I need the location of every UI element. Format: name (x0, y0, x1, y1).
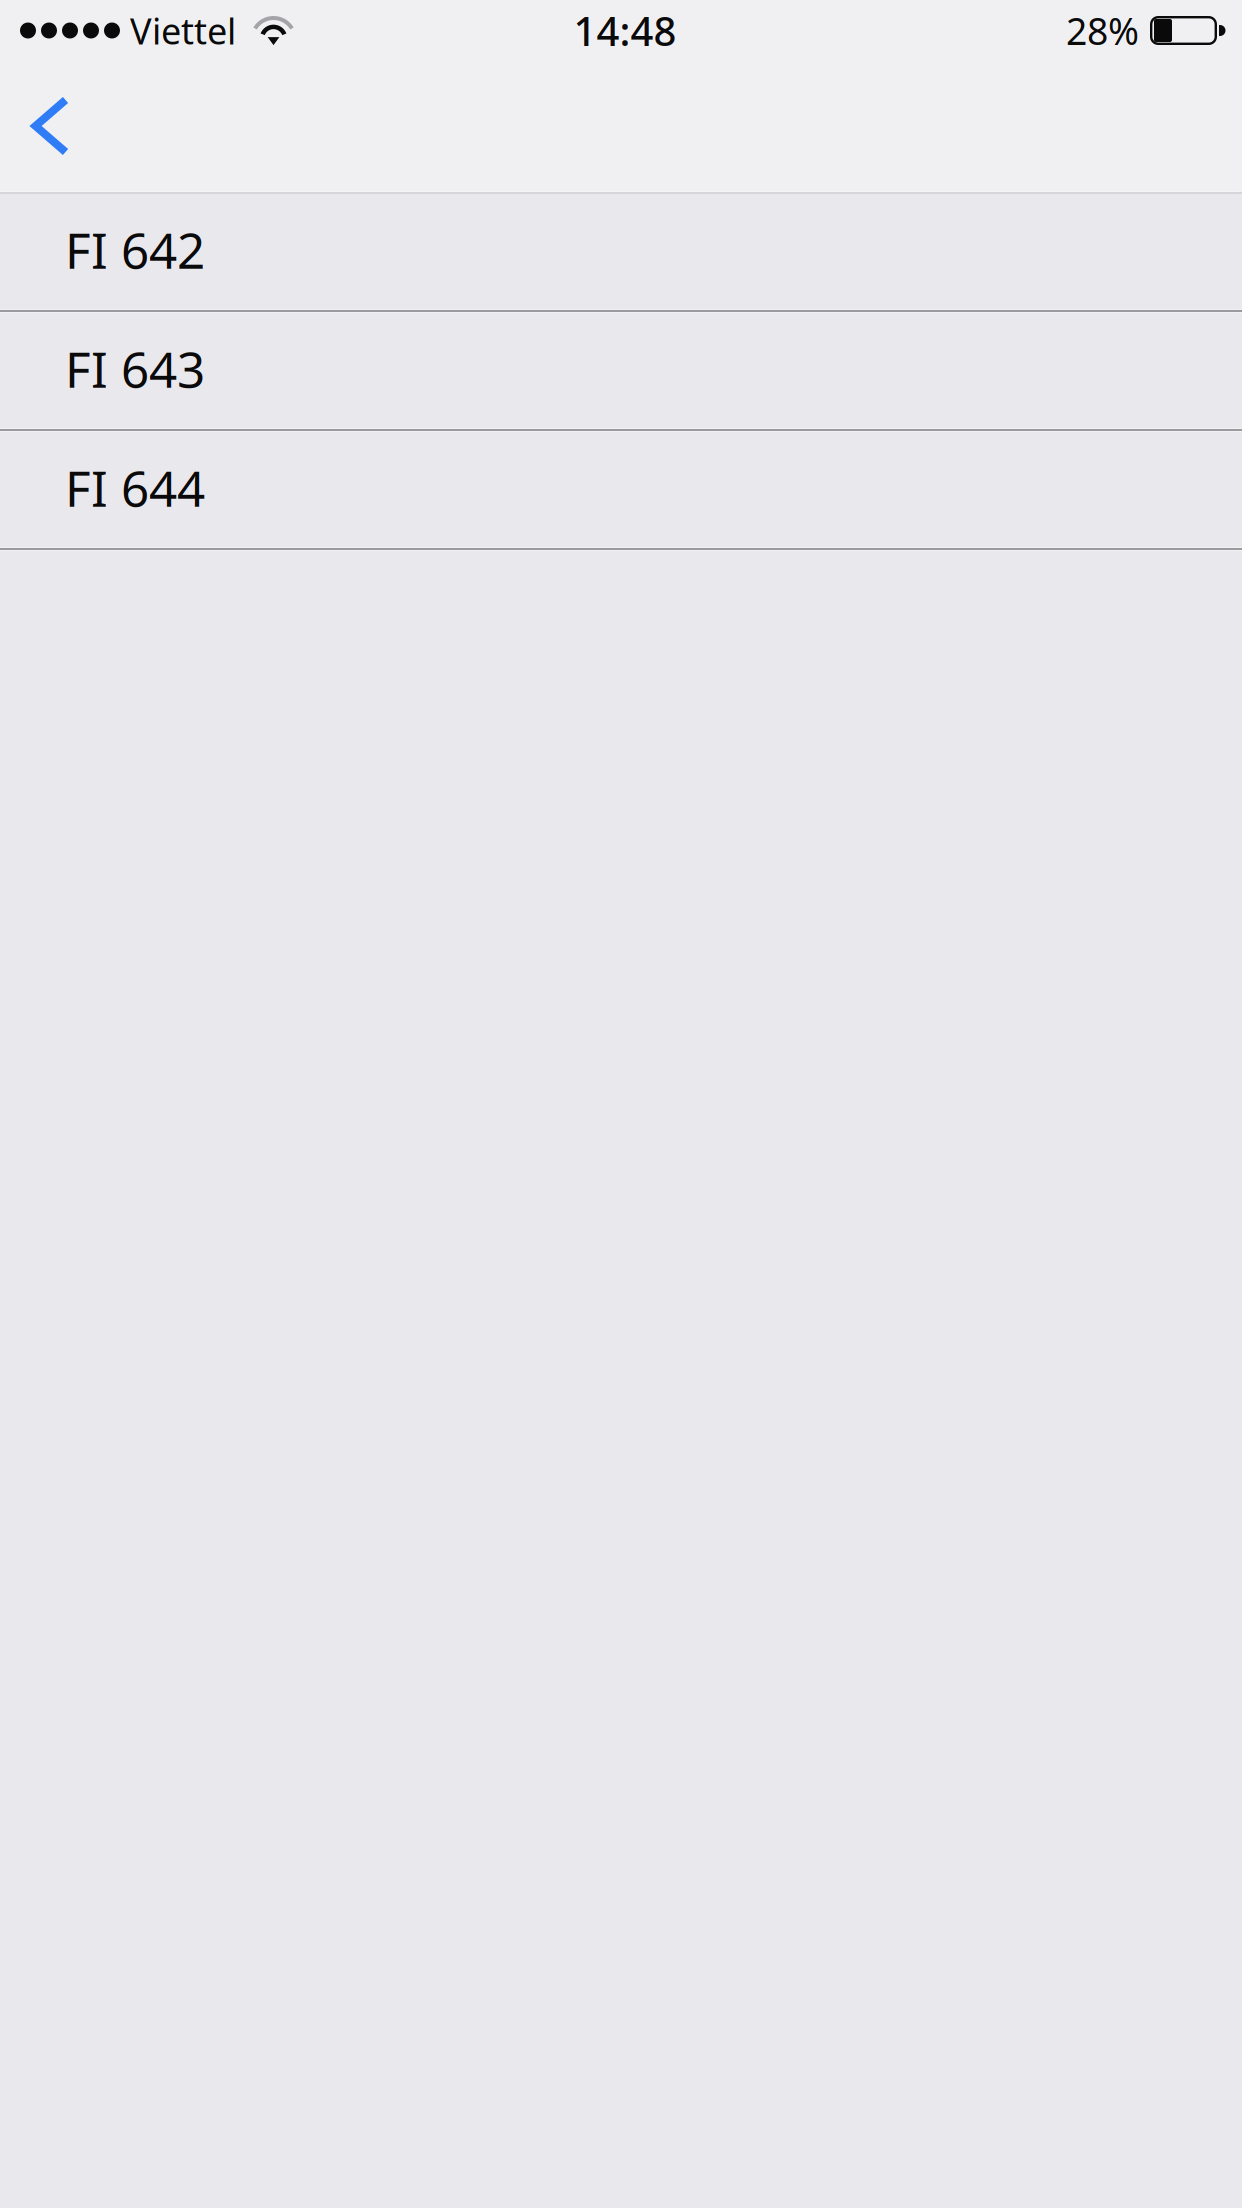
staticText: Viettel (130, 7, 236, 54)
button[interactable]: FI 643 (0, 313, 1242, 432)
button[interactable]: FI 644 (0, 432, 1242, 551)
staticText: FI 644 (65, 455, 205, 520)
button[interactable]: Back (0, 61, 100, 191)
button[interactable]: FI 642 (0, 194, 1242, 313)
staticText: 14:48 (573, 4, 676, 57)
staticText: FI 643 (65, 336, 205, 401)
staticText: FI 642 (65, 217, 205, 282)
staticText: 28% (1066, 6, 1139, 55)
